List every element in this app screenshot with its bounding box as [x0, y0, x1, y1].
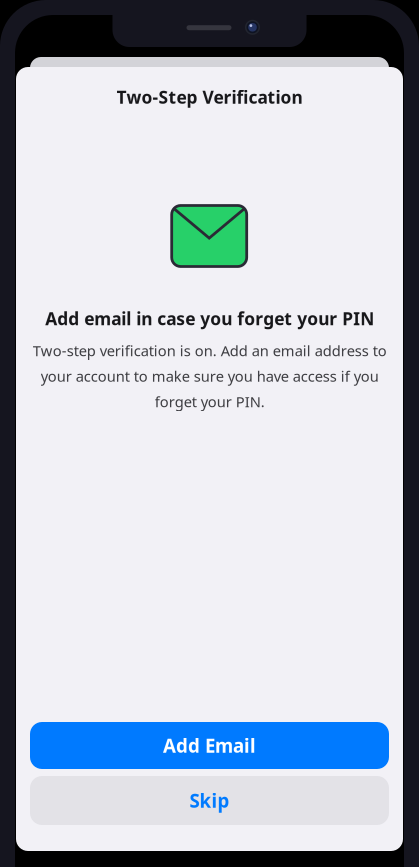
button[interactable]: Skip: [30, 776, 389, 825]
staticText: Two-Step Verification: [116, 85, 302, 108]
staticText: Add email in case you forget your PIN: [45, 307, 374, 330]
staticText: Add Email: [163, 733, 256, 758]
staticText: Two-step verification is on. Add an emai…: [32, 341, 386, 411]
button[interactable]: Add Email: [30, 722, 389, 769]
staticText: Skip: [189, 788, 229, 813]
